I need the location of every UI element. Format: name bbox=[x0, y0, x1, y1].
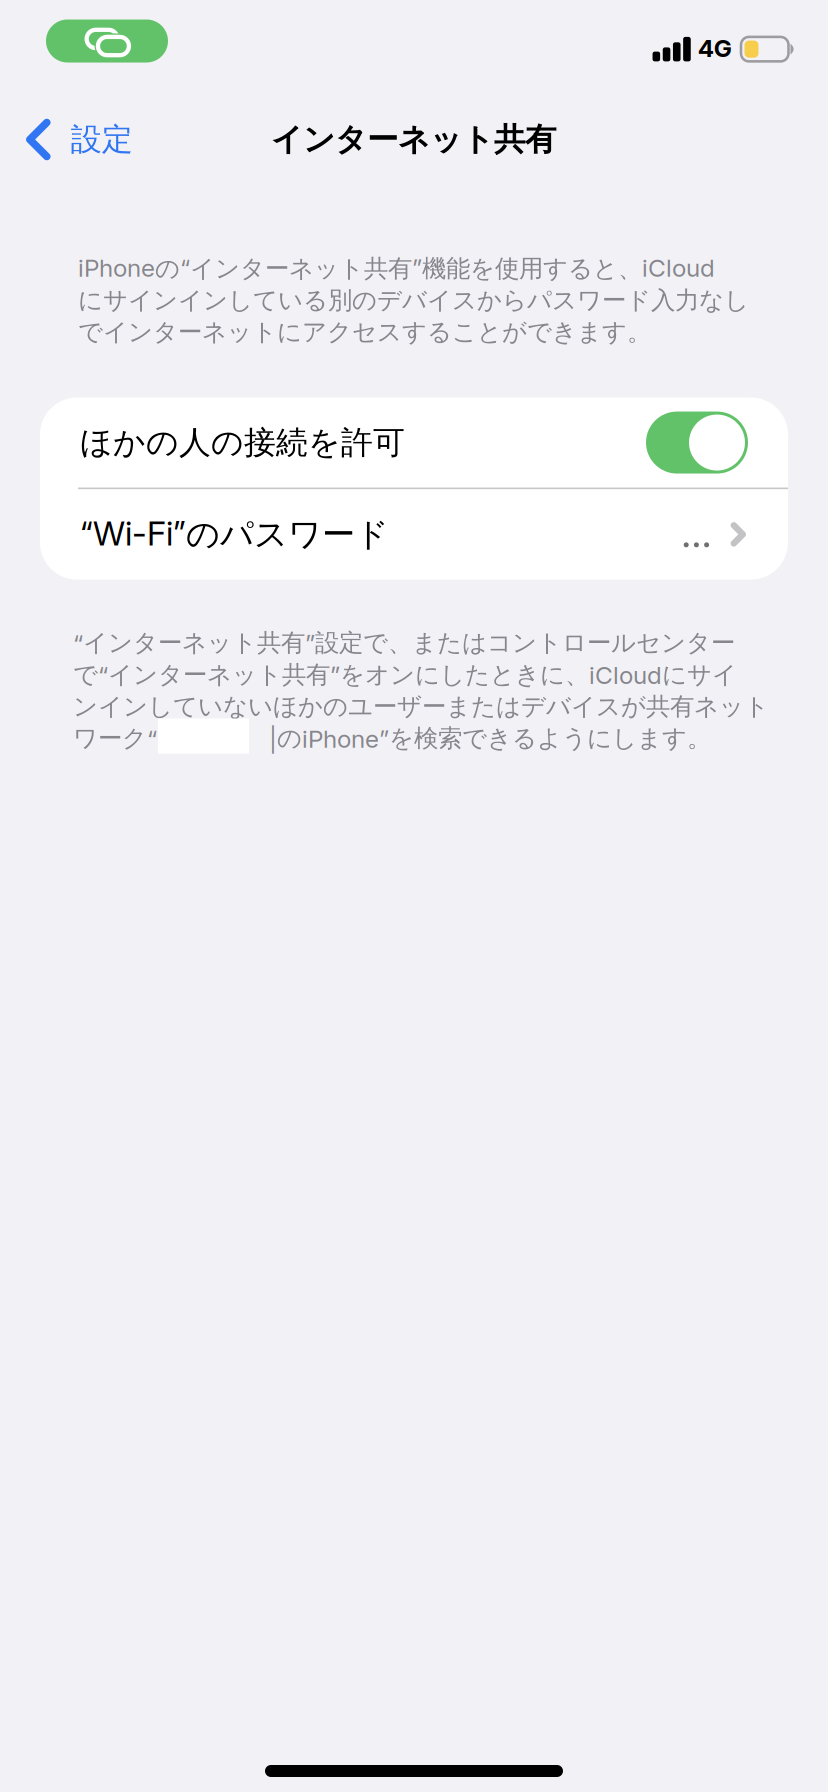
staticText: iPhoneの“インターネット共有”機能を使用すると、iCloud にサインイン… bbox=[78, 253, 749, 348]
staticText: ほかの人の接続を許可 bbox=[80, 422, 405, 463]
button[interactable]: ほかの人の接続を許可 bbox=[40, 398, 788, 488]
button[interactable]: Personal Hotspot active bbox=[46, 19, 168, 62]
staticText: 設定 bbox=[71, 120, 133, 159]
staticText: “インターネット共有”設定で、またはコントロールセンター で“インターネット共有… bbox=[73, 628, 769, 754]
button[interactable]: 設定 bbox=[0, 88, 147, 191]
staticText: インターネット共有 bbox=[271, 120, 556, 159]
button[interactable]: “Wi-Fi”のパスワード bbox=[40, 489, 788, 580]
staticText: 4G bbox=[698, 33, 732, 63]
staticText: “Wi-Fi”のパスワード bbox=[80, 513, 389, 555]
